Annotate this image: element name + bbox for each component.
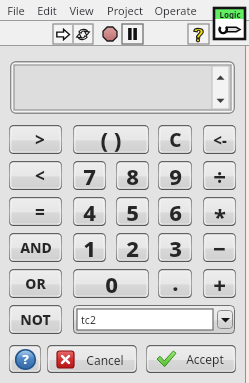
staticText: Cancel — [86, 352, 124, 368]
staticText: * — [214, 201, 226, 226]
button[interactable]: * — [203, 197, 236, 226]
staticText: > — [35, 128, 45, 151]
button[interactable]: 5 — [116, 197, 149, 226]
button[interactable]: 0 — [73, 269, 149, 298]
button[interactable]: Scroll — [212, 66, 229, 109]
staticText: 9 — [169, 161, 182, 190]
button[interactable]: Run — [53, 24, 73, 44]
button[interactable]: AND — [9, 233, 62, 262]
staticText: NOT — [20, 310, 51, 329]
button[interactable]: ÷ — [203, 161, 236, 190]
button[interactable]: 9 — [158, 161, 192, 190]
button[interactable]: 6 — [158, 197, 192, 226]
button[interactable]: View — [65, 2, 98, 18]
staticText: OR — [25, 274, 46, 293]
button[interactable]: 4 — [73, 197, 106, 226]
button[interactable]: Abort execution — [98, 24, 121, 44]
button[interactable]: Cancel — [47, 345, 137, 373]
staticText: = — [35, 200, 45, 223]
button[interactable]: OR — [9, 269, 62, 298]
staticText: Operate — [154, 3, 197, 18]
button[interactable]: = — [9, 197, 62, 226]
staticText: 1 — [83, 233, 96, 262]
staticText: View — [69, 3, 94, 18]
staticText: 5 — [126, 197, 139, 226]
button[interactable]: Accept — [146, 345, 236, 373]
staticText: + — [213, 269, 226, 298]
button[interactable]: Run continuously — [73, 24, 93, 44]
button[interactable]: Pause — [122, 24, 143, 44]
button[interactable] — [14, 65, 231, 110]
staticText: ÷ — [213, 161, 226, 190]
staticText: 2 — [126, 233, 139, 262]
staticText: < — [35, 164, 45, 187]
staticText: 7 — [83, 161, 96, 190]
button[interactable]: . — [158, 269, 192, 298]
button[interactable]: 3 — [158, 233, 192, 262]
button[interactable]: Operate — [150, 2, 201, 18]
staticText: Logic — [219, 9, 241, 19]
staticText: File — [7, 3, 25, 18]
button[interactable]: C — [158, 125, 192, 154]
button[interactable]: 7 — [73, 161, 106, 190]
staticText: . — [172, 269, 179, 296]
button[interactable]: Open variable list — [217, 310, 233, 329]
staticText: 8 — [126, 161, 139, 190]
staticText: ? — [22, 350, 29, 368]
staticText: C — [169, 127, 182, 153]
staticText: − — [213, 233, 226, 262]
staticText: tc2 — [81, 313, 96, 327]
button[interactable]: 8 — [116, 161, 149, 190]
staticText: Accept — [186, 351, 224, 367]
staticText: Edit — [37, 3, 57, 18]
button[interactable]: <- — [203, 125, 236, 154]
button[interactable]: NOT — [9, 305, 62, 334]
button[interactable]: 2 — [116, 233, 149, 262]
button[interactable]: Edit — [33, 2, 61, 18]
staticText: Project — [107, 3, 143, 18]
button[interactable]: + — [203, 269, 236, 298]
button[interactable]: tc2 — [73, 305, 235, 334]
staticText: ( ) — [100, 125, 122, 153]
button[interactable]: < — [9, 161, 62, 190]
button[interactable]: Logic palette — [214, 8, 245, 39]
button[interactable]: Context help — [188, 24, 209, 44]
staticText: <- — [213, 130, 227, 150]
button[interactable]: Project — [103, 2, 147, 18]
button[interactable]: 1 — [73, 233, 106, 262]
button[interactable]: Help — [9, 345, 41, 373]
staticText: 0 — [105, 269, 118, 298]
button[interactable]: > — [9, 125, 62, 154]
staticText: 4 — [83, 197, 96, 226]
staticText: AND — [20, 238, 52, 257]
button[interactable]: ( ) — [73, 125, 149, 154]
button[interactable]: − — [203, 233, 236, 262]
staticText: 6 — [169, 197, 182, 226]
button[interactable]: File — [3, 2, 29, 18]
staticText: 3 — [169, 233, 182, 262]
